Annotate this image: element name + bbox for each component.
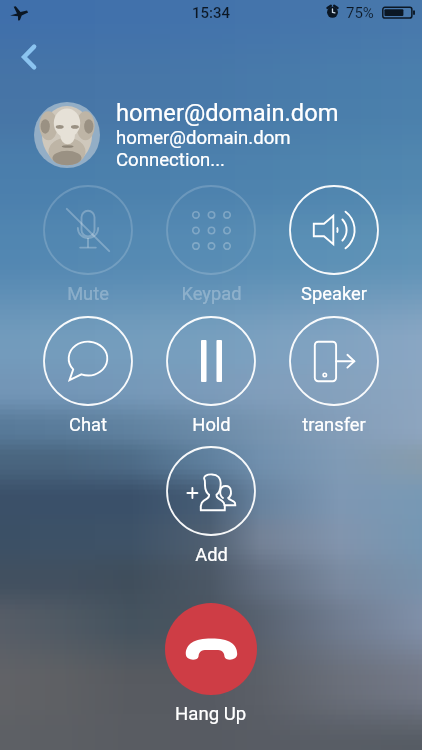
staticText: Add	[195, 544, 228, 565]
staticText: transfer	[302, 414, 366, 435]
button[interactable]: transfer	[269, 316, 399, 435]
button[interactable]: Add	[146, 446, 276, 565]
staticText: Chat	[69, 414, 107, 435]
staticText: Connection...	[116, 149, 226, 171]
button: Keypad	[146, 185, 276, 304]
button[interactable]: Speaker	[269, 185, 399, 304]
staticText: Speaker	[301, 283, 367, 304]
staticText: Hold	[192, 414, 231, 435]
staticText: homer@domain.dom	[116, 127, 291, 149]
staticText: Hang Up	[175, 703, 247, 725]
staticText: 75%	[346, 4, 374, 22]
button[interactable]: Hang Up	[165, 603, 257, 695]
staticText: 15:34	[192, 4, 231, 22]
button[interactable]: Back	[10, 37, 50, 77]
staticText: Keypad	[181, 283, 242, 304]
staticText: homer@domain.dom	[116, 99, 339, 127]
button[interactable]: Hold	[146, 316, 276, 435]
button[interactable]: Chat	[23, 316, 153, 435]
button: Mute	[23, 185, 153, 304]
staticText: Mute	[67, 283, 109, 304]
